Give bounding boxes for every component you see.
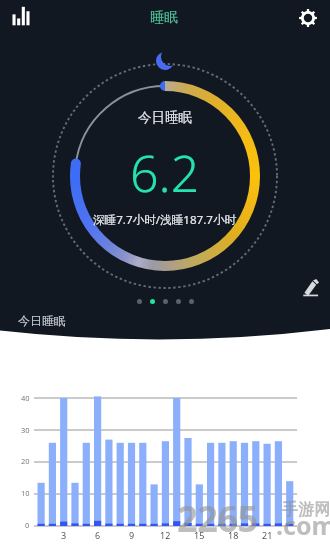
- staticText: 3: [61, 529, 67, 541]
- staticText: .com: [276, 508, 330, 542]
- staticText: 40: [21, 393, 30, 403]
- staticText: 12: [160, 529, 171, 541]
- staticText: 今日睡眠: [138, 109, 192, 126]
- staticText: 10: [21, 488, 30, 498]
- staticText: 0: [25, 520, 30, 530]
- staticText: 6: [95, 529, 101, 541]
- staticText: 2265: [177, 494, 258, 543]
- staticText: 睡眠: [150, 9, 178, 27]
- staticText: 今日睡眠: [18, 313, 66, 328]
- staticText: 深睡7.7小时/浅睡187.7小时: [93, 212, 237, 228]
- staticText: 18: [228, 529, 239, 541]
- staticText: 9: [129, 529, 135, 541]
- button[interactable]: Statistics: [0, 0, 42, 36]
- button[interactable]: Edit: [294, 272, 326, 304]
- staticText: 30: [21, 425, 30, 435]
- button[interactable]: Settings: [286, 0, 330, 36]
- staticText: 21: [262, 529, 273, 541]
- staticText: 15: [194, 529, 205, 541]
- staticText: 手游网: [282, 500, 330, 520]
- staticText: 6.2: [130, 139, 200, 207]
- staticText: 20: [21, 456, 30, 466]
